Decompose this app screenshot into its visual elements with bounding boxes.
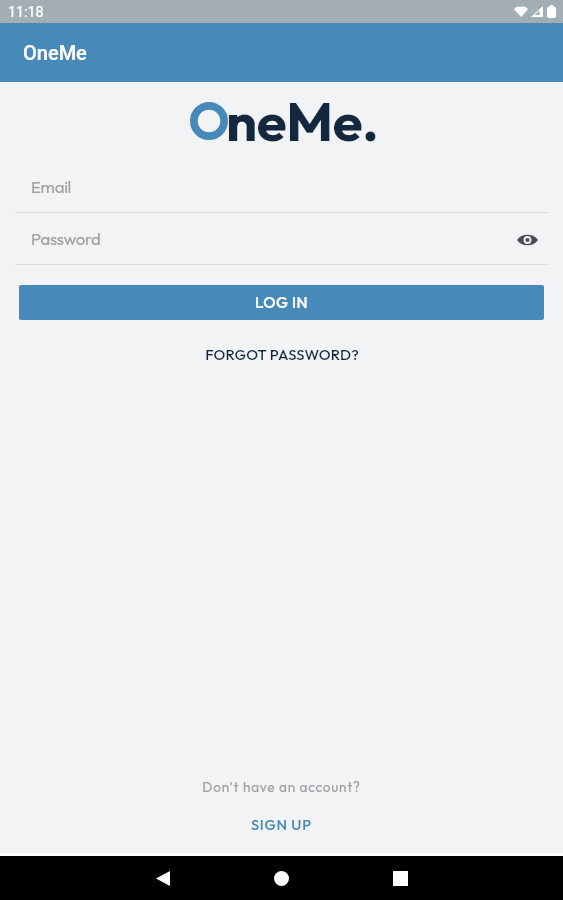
button[interactable]: FORGOT PASSWORD? <box>0 341 563 368</box>
staticText: SIGN UP <box>251 815 312 833</box>
button[interactable]: Show password <box>511 224 543 256</box>
staticText: neMe. <box>226 86 379 155</box>
button[interactable]: SIGN UP <box>233 812 330 836</box>
button[interactable]: Password <box>15 232 548 264</box>
staticText: 11:18 <box>8 4 44 21</box>
button[interactable]: Email <box>15 180 548 212</box>
staticText: Email <box>31 176 72 197</box>
button[interactable]: LOG IN <box>19 285 544 320</box>
staticText: OneMe <box>23 41 87 64</box>
staticText: Password <box>31 228 101 249</box>
button[interactable]: Home <box>258 856 305 900</box>
button[interactable]: Recent apps <box>377 856 424 900</box>
button[interactable]: Back <box>139 856 186 900</box>
staticText: FORGOT PASSWORD? <box>205 345 359 364</box>
staticText: Don't have an account? <box>202 778 361 795</box>
staticText: LOG IN <box>255 292 309 312</box>
